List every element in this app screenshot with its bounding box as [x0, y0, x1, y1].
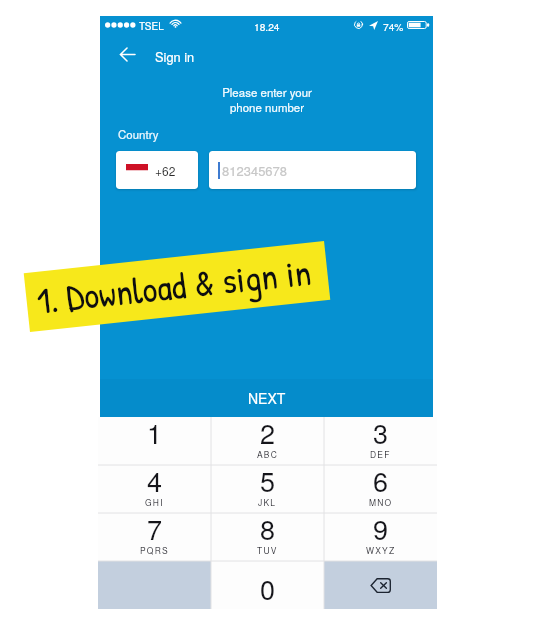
button[interactable]: 8 — [211, 513, 324, 561]
staticText: 7 — [147, 509, 163, 545]
staticText: 5 — [260, 461, 276, 497]
staticText: TSEL — [139, 19, 164, 33]
button[interactable]: 4 — [98, 465, 211, 513]
button[interactable]: NEXT — [100, 379, 433, 417]
staticText: DEF — [370, 448, 391, 460]
staticText: 9 — [373, 509, 389, 545]
button[interactable]: 1 — [98, 417, 211, 465]
staticText: 3 — [373, 413, 389, 449]
staticText: 6 — [373, 461, 389, 497]
staticText: 0 — [260, 569, 276, 605]
staticText: ABC — [257, 448, 279, 460]
staticText: 2 — [260, 413, 276, 449]
staticText: 18.24 — [254, 19, 280, 34]
button[interactable]: 2 — [211, 417, 324, 465]
button[interactable]: 6 — [324, 465, 437, 513]
button[interactable]: 3 — [324, 417, 437, 465]
button[interactable]: Back — [113, 40, 141, 68]
staticText: MNO — [369, 496, 393, 508]
staticText: Please enter your phone number — [222, 84, 312, 115]
button[interactable]: 0 — [211, 561, 324, 609]
staticText: 1. Download & sign in — [34, 246, 314, 325]
button[interactable]: 5 — [211, 465, 324, 513]
staticText: WXYZ — [366, 544, 396, 556]
staticText: JKL — [258, 496, 277, 508]
button[interactable]: Backspace — [324, 561, 437, 609]
staticText: TUV — [257, 544, 278, 556]
staticText: NEXT — [248, 388, 286, 408]
button[interactable]: +62 — [116, 151, 198, 189]
staticText: PQRS — [140, 544, 169, 556]
button[interactable]: 7 — [98, 513, 211, 561]
staticText: Country — [118, 126, 159, 142]
staticText: 1 — [147, 413, 163, 449]
staticText: Sign in — [155, 47, 195, 65]
staticText: 8 — [260, 509, 276, 545]
staticText: 812345678 — [222, 161, 288, 180]
staticText: 4 — [147, 461, 163, 497]
button[interactable]: 9 — [324, 513, 437, 561]
button[interactable]: 812345678 — [209, 151, 416, 189]
staticText: GHI — [145, 496, 164, 508]
staticText: 74% — [383, 19, 404, 34]
staticText: +62 — [155, 162, 176, 179]
